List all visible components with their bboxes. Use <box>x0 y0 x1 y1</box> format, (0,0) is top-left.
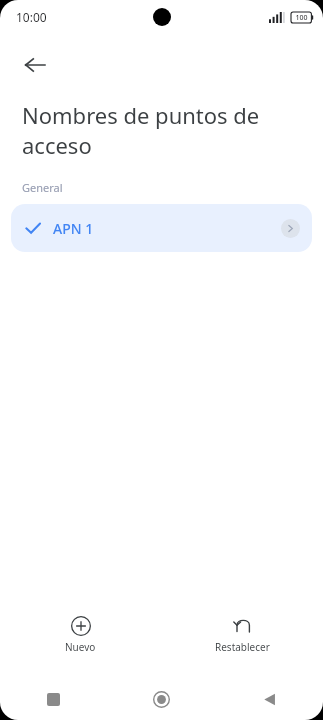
staticText: Nombres de puntos de acceso <box>22 100 293 160</box>
button[interactable]: Home <box>107 678 215 720</box>
button[interactable]: Back <box>12 42 58 88</box>
staticText: Restablecer <box>215 640 270 654</box>
staticText: 100 <box>295 13 308 23</box>
button[interactable]: Back <box>215 678 323 720</box>
staticText: 10:00 <box>16 9 47 25</box>
button[interactable]: Edit APN 1 <box>281 219 300 238</box>
staticText: General <box>22 180 63 195</box>
button[interactable]: APN 1 <box>11 204 312 252</box>
staticText: APN 1 <box>53 219 94 238</box>
staticText: Nuevo <box>65 640 96 654</box>
button[interactable]: Nuevo <box>51 614 110 656</box>
button[interactable]: Restablecer <box>201 614 284 656</box>
button[interactable]: Recent apps <box>0 678 107 720</box>
